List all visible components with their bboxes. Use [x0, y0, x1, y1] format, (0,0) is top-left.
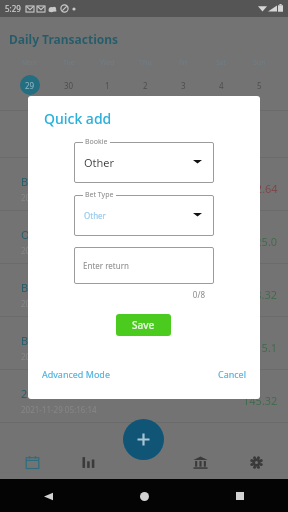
button[interactable]: Cancel: [212, 362, 253, 386]
button[interactable]: [74, 142, 214, 183]
button[interactable]: Tue: [49, 56, 88, 104]
staticText: Other: [21, 227, 52, 242]
staticText: -12.64: [246, 181, 278, 196]
staticText: +8.32: [249, 287, 278, 302]
button[interactable]: Calendar: [4, 446, 60, 479]
staticText: 5:29: [5, 3, 21, 14]
button[interactable]: Statistics: [60, 446, 116, 479]
staticText: 2021-11-29 18:04: [21, 192, 86, 203]
button[interactable]: Add transaction: [123, 419, 164, 460]
staticText: Bet365: [21, 280, 58, 295]
button[interactable]: Settings: [228, 446, 284, 479]
button[interactable]: Bet365: [0, 158, 288, 211]
staticText: 30: [64, 80, 74, 91]
staticText: 145.32: [243, 393, 278, 408]
staticText: 2021-11-29 05:16:14: [21, 404, 97, 415]
staticText: Bet365: [21, 174, 58, 189]
staticText: 2: [143, 80, 148, 91]
staticText: Advanced Mode: [42, 368, 110, 380]
staticText: +15.1: [249, 340, 278, 355]
staticText: 2021-11-29 16:55: [21, 351, 86, 362]
button[interactable]: Accounts: [172, 446, 228, 479]
button[interactable]: Fri: [164, 56, 202, 104]
staticText: 2021-11-29 17:10: [21, 298, 86, 309]
staticText: Tue: [63, 58, 75, 68]
staticText: Sun: [253, 58, 266, 68]
button[interactable]: Sun: [240, 56, 278, 104]
staticText: Mon: [22, 58, 37, 68]
staticText: Quick add: [44, 109, 112, 128]
button[interactable]: Sat: [202, 56, 240, 104]
staticText: Daily Transactions: [9, 31, 119, 47]
staticText: Other: [84, 210, 106, 221]
button[interactable]: Back: [37, 485, 59, 507]
button[interactable]: Enter return: [74, 247, 214, 284]
staticText: 5: [257, 80, 262, 91]
staticText: Save: [132, 318, 155, 332]
button[interactable]: Bet365: [0, 264, 288, 317]
button[interactable]: Save: [116, 314, 171, 336]
staticText: Bet365: [21, 333, 58, 348]
button[interactable]: Recents: [229, 485, 251, 507]
button[interactable]: Home: [133, 485, 155, 507]
staticText: Enter return: [83, 260, 129, 271]
staticText: Bet Type: [85, 190, 114, 200]
button[interactable]: [0, 111, 288, 158]
button[interactable]: [74, 195, 214, 236]
staticText: Wed: [100, 58, 115, 68]
staticText: 2021-11-29 17:42: [21, 245, 86, 256]
button[interactable]: Thu: [126, 56, 164, 104]
button[interactable]: 2021: [0, 370, 288, 423]
staticText: 29: [25, 80, 35, 91]
staticText: 0/8: [183, 289, 205, 300]
staticText: Bookie: [85, 137, 108, 147]
button[interactable]: Bet365: [0, 317, 288, 370]
staticText: Fri: [179, 58, 188, 68]
button[interactable]: Wed: [88, 56, 126, 104]
staticText: +25.0: [249, 234, 278, 249]
staticText: 4: [219, 80, 224, 91]
staticText: 2021: [21, 386, 47, 401]
staticText: 1: [105, 80, 110, 91]
staticText: 3: [181, 80, 186, 91]
staticText: Cancel: [218, 368, 247, 380]
button[interactable]: Other: [0, 211, 288, 264]
staticText: Sat: [216, 58, 227, 68]
button[interactable]: Advanced Mode: [36, 362, 116, 386]
button[interactable]: Mon: [10, 56, 49, 104]
staticText: Thu: [139, 58, 152, 68]
staticText: Other: [84, 155, 115, 170]
